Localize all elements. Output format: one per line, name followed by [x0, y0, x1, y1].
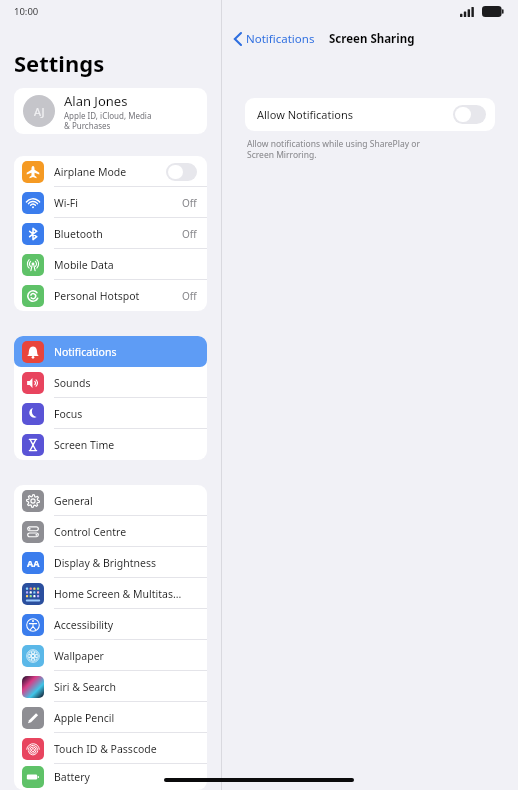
- staticText: Bluetooth: [54, 227, 182, 241]
- staticText: Apple ID, iCloud, Media & Purchases: [64, 110, 152, 131]
- button[interactable]: Wallpaper: [14, 640, 207, 671]
- button[interactable]: General: [14, 485, 207, 516]
- button[interactable]: Touch ID & Passcode: [14, 733, 207, 764]
- staticText: Focus: [54, 407, 197, 421]
- button[interactable]: Bluetooth: [14, 218, 207, 249]
- button[interactable]: AA: [14, 547, 207, 578]
- staticText: Notifications: [246, 31, 315, 47]
- button[interactable]: Mobile Data: [14, 249, 207, 280]
- button[interactable]: Allow Notifications: [245, 98, 495, 131]
- staticText: Settings: [14, 48, 105, 78]
- staticText: 10:00: [14, 5, 39, 18]
- staticText: Screen Sharing: [329, 31, 415, 47]
- staticText: Off: [182, 289, 197, 303]
- staticText: General: [54, 494, 197, 508]
- staticText: Display & Brightness: [54, 556, 197, 570]
- staticText: Airplane Mode: [54, 165, 166, 179]
- staticText: Allow notifications while using SharePla…: [247, 138, 420, 160]
- staticText: Wallpaper: [54, 649, 197, 663]
- staticText: AA: [27, 557, 40, 569]
- button[interactable]: Battery: [14, 764, 207, 790]
- staticText: Siri & Search: [54, 680, 197, 694]
- button[interactable]: Wi-Fi: [14, 187, 207, 218]
- staticText: Battery: [54, 770, 197, 784]
- button[interactable]: Airplane Mode: [14, 156, 207, 187]
- button[interactable]: Personal Hotspot: [14, 280, 207, 311]
- button[interactable]: Focus: [14, 398, 207, 429]
- button[interactable]: Notifications: [14, 336, 207, 367]
- staticText: Alan Jones: [64, 92, 128, 110]
- button[interactable]: Control Centre: [14, 516, 207, 547]
- staticText: AJ: [34, 104, 45, 119]
- staticText: Home Screen & Multitas...: [54, 587, 197, 601]
- staticText: Screen Time: [54, 438, 197, 452]
- staticText: Notifications: [54, 345, 197, 359]
- button[interactable]: Allow Notifications toggle: [453, 105, 486, 124]
- button[interactable]: Home Screen & Multitas...: [14, 578, 207, 609]
- staticText: Off: [182, 227, 197, 241]
- staticText: Accessibility: [54, 618, 197, 632]
- button[interactable]: Screen Time: [14, 429, 207, 460]
- staticText: Wi-Fi: [54, 196, 182, 210]
- staticText: Personal Hotspot: [54, 289, 182, 303]
- button[interactable]: AJ: [14, 88, 207, 134]
- staticText: Off: [182, 196, 197, 210]
- button[interactable]: Sounds: [14, 367, 207, 398]
- staticText: Apple Pencil: [54, 711, 197, 725]
- button[interactable]: Notifications: [231, 28, 318, 50]
- button[interactable]: Apple Pencil: [14, 702, 207, 733]
- staticText: Mobile Data: [54, 258, 197, 272]
- button[interactable]: Airplane Mode toggle: [166, 163, 197, 181]
- button[interactable]: Accessibility: [14, 609, 207, 640]
- staticText: Sounds: [54, 376, 197, 390]
- staticText: Control Centre: [54, 525, 197, 539]
- staticText: Allow Notifications: [257, 107, 453, 122]
- staticText: Touch ID & Passcode: [54, 742, 197, 756]
- button[interactable]: Siri & Search: [14, 671, 207, 702]
